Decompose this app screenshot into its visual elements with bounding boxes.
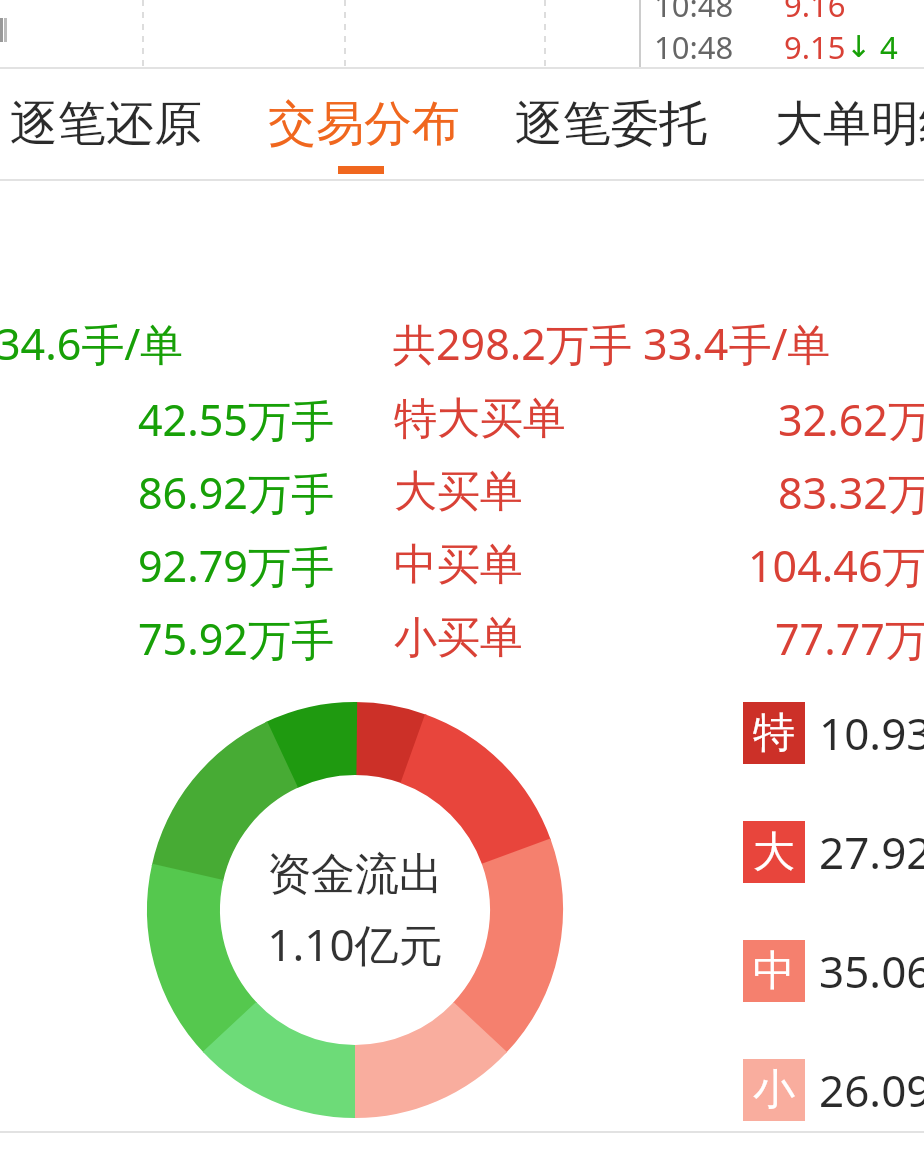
staticText: 77.77万 [775, 609, 924, 668]
staticText: 逐笔还原 [10, 94, 202, 154]
staticText: 32.62万 [778, 390, 924, 449]
staticText: 83.32万 [778, 463, 924, 522]
button[interactable]: 交易分布 [268, 69, 468, 179]
staticText: 大单明细 [775, 94, 924, 154]
button[interactable]: 大单明细 [775, 69, 924, 179]
staticText: 中买单 [394, 538, 523, 592]
staticText: 92.79万手 [138, 536, 334, 595]
button[interactable]: 75.92万手 [0, 607, 924, 669]
staticText: 小 [753, 1064, 795, 1117]
button[interactable]: 中 [743, 940, 924, 1002]
staticText: 35.06 [819, 941, 924, 1001]
staticText: 27.92% [819, 822, 924, 882]
staticText: 小买单 [394, 611, 523, 665]
staticText: 9.16 [784, 0, 846, 18]
staticText: 特大买单 [394, 392, 566, 446]
staticText: 中 [753, 945, 795, 998]
button[interactable]: 42.55万手 [0, 388, 924, 450]
staticText: 资金流出 [267, 847, 443, 902]
staticText: 交易分布 [268, 94, 460, 154]
staticText: 大 [753, 826, 795, 879]
button[interactable]: 92.79万手 [0, 534, 924, 596]
button[interactable]: 大 [743, 821, 924, 883]
button[interactable]: 资金流向饼图 [147, 702, 563, 1118]
staticText: 34.6手/单 [0, 314, 184, 373]
staticText: 75.92万手 [138, 609, 334, 668]
staticText: 1.10亿元 [267, 914, 443, 974]
staticText: 4 [880, 26, 898, 66]
staticText: 10.93% [819, 703, 924, 763]
staticText: 9.15 [784, 26, 846, 66]
staticText: 104.46万 [748, 536, 924, 595]
staticText: 特 [753, 707, 795, 760]
staticText: 26.09 [819, 1060, 924, 1120]
staticText: 10:48 [654, 26, 734, 66]
staticText: 86.92万手 [138, 463, 334, 522]
button[interactable]: 86.92万手 [0, 461, 924, 523]
button[interactable]: 逐笔还原 [10, 69, 210, 179]
button[interactable]: 逐笔委托 [515, 69, 715, 179]
staticText: ↓ [846, 29, 872, 64]
staticText: 10:48 [654, 0, 734, 18]
staticText: 逐笔委托 [515, 94, 707, 154]
staticText: 共298.2万手 33.4手/单 [393, 314, 831, 373]
button[interactable]: 特 [743, 702, 924, 764]
button[interactable]: 小 [743, 1059, 924, 1121]
staticText: 大买单 [394, 465, 523, 519]
staticText: 42.55万手 [138, 390, 334, 449]
